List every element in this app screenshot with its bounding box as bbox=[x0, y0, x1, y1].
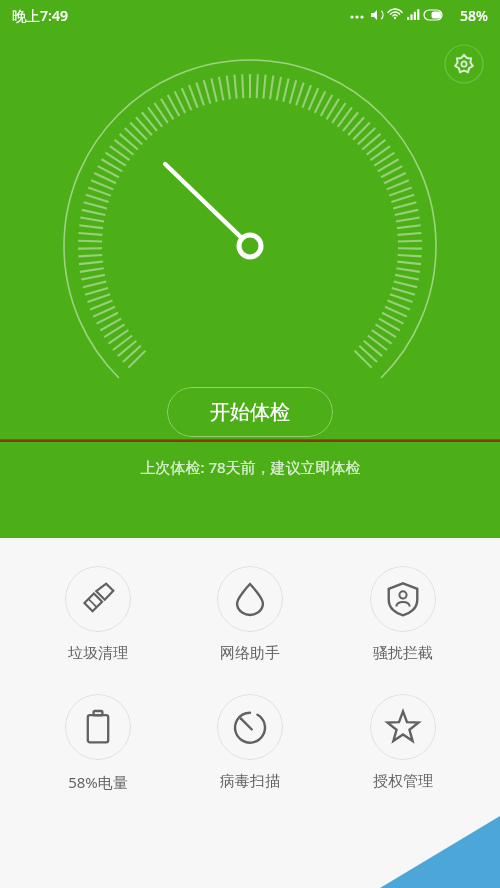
button[interactable]: 骚扰拦截 bbox=[348, 564, 458, 665]
staticText: 垃圾清理 bbox=[68, 644, 128, 663]
button[interactable]: 58%电量 bbox=[43, 692, 153, 794]
staticText: 病毒扫描 bbox=[220, 772, 280, 791]
staticText: 开始体检 bbox=[210, 400, 290, 425]
staticText: 网络助手 bbox=[220, 644, 280, 663]
staticText: 上次体检: 78天前，建议立即体检 bbox=[140, 457, 361, 477]
staticText: 授权管理 bbox=[373, 772, 433, 791]
button[interactable]: 开始体检 bbox=[167, 387, 333, 437]
button[interactable]: 病毒扫描 bbox=[195, 692, 305, 793]
staticText: 58%电量 bbox=[68, 772, 128, 792]
staticText: 58% bbox=[460, 6, 488, 25]
button[interactable]: 授权管理 bbox=[348, 692, 458, 793]
staticText: 骚扰拦截 bbox=[373, 644, 433, 663]
button[interactable]: Settings bbox=[444, 44, 484, 84]
button[interactable]: 垃圾清理 bbox=[43, 564, 153, 665]
staticText: 晚上7:49 bbox=[12, 6, 68, 25]
button[interactable]: 网络助手 bbox=[195, 564, 305, 665]
